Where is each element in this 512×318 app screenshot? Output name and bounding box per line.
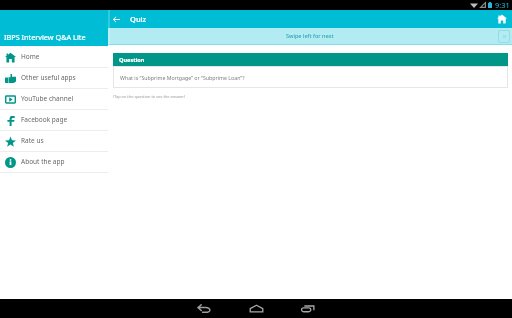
- button[interactable]: Rate us: [0, 131, 108, 152]
- staticText: 9:31: [495, 0, 510, 10]
- button[interactable]: Close: [498, 30, 510, 43]
- staticText: IBPS Interview Q&A Lite: [4, 32, 86, 42]
- staticText: (Tap on the question to see the answer): [113, 94, 185, 99]
- button[interactable]: About the app: [0, 152, 108, 173]
- staticText: Other useful apps: [21, 73, 76, 82]
- button[interactable]: YouTube channel: [0, 89, 108, 110]
- staticText: About the app: [21, 157, 65, 166]
- button[interactable]: Recent apps: [287, 299, 329, 318]
- staticText: Question: [119, 56, 145, 64]
- staticText: Rate us: [21, 136, 44, 145]
- staticText: Quiz: [130, 14, 147, 24]
- button[interactable]: Home: [0, 47, 108, 68]
- button[interactable]: Home: [235, 299, 277, 318]
- button[interactable]: Other useful apps: [0, 68, 108, 89]
- staticText: Home: [21, 52, 40, 61]
- staticText: What is “Subprime Mortgage” or “Subprime…: [120, 74, 245, 81]
- button[interactable]: Back: [183, 299, 225, 318]
- button[interactable]: Back: [110, 11, 122, 27]
- staticText: YouTube channel: [21, 94, 74, 103]
- button[interactable]: Facebook page: [0, 110, 108, 131]
- button[interactable]: Home: [494, 11, 510, 27]
- staticText: Swipe left for next: [286, 32, 334, 40]
- button[interactable]: Question: [113, 53, 508, 88]
- staticText: Facebook page: [21, 115, 68, 124]
